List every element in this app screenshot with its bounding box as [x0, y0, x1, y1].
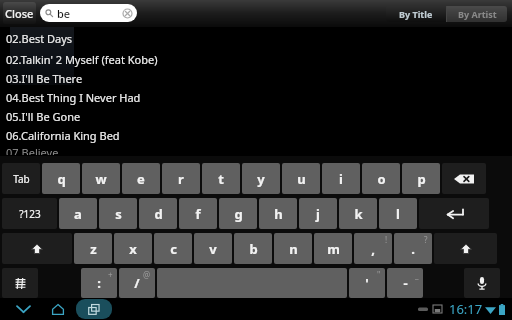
button[interactable]: a [59, 198, 97, 229]
button[interactable]: x [114, 233, 152, 264]
staticText: b [249, 240, 258, 258]
staticText: x [129, 240, 137, 258]
button[interactable]: Tab [2, 163, 40, 194]
staticText: _ [415, 269, 419, 280]
button[interactable]: Backspace [442, 163, 486, 194]
button[interactable]: ' [349, 268, 385, 298]
button[interactable]: : [81, 268, 117, 298]
button[interactable]: Enter [419, 198, 489, 229]
staticText: k [354, 205, 363, 223]
staticText: w [95, 170, 107, 188]
staticText: 07.Believe [6, 145, 59, 155]
button[interactable]: i [322, 163, 360, 194]
staticText: - [403, 274, 408, 292]
button[interactable]: s [99, 198, 137, 229]
button[interactable]: Shift [434, 233, 497, 264]
button[interactable]: Shift [2, 233, 72, 264]
button[interactable]: 02.Talkin' 2 Myself (feat Kobe) [0, 50, 512, 69]
staticText: d [154, 205, 163, 223]
button[interactable]: By Title [386, 6, 446, 22]
staticText: " [377, 269, 381, 280]
staticText: ' [365, 274, 369, 292]
staticText: y [257, 170, 265, 188]
button[interactable]: Voice input [464, 268, 500, 298]
button[interactable]: e [122, 163, 160, 194]
button[interactable]: By Artist [447, 6, 507, 22]
staticText: 06.California King Bed [6, 128, 120, 143]
staticText: ! [385, 234, 388, 245]
button[interactable]: Back [8, 299, 38, 319]
staticText: r [178, 170, 184, 188]
staticText: h [274, 205, 283, 223]
staticText: o [377, 170, 386, 188]
button[interactable]: o [362, 163, 400, 194]
button[interactable]: g [219, 198, 257, 229]
button[interactable]: l [379, 198, 417, 229]
staticText: / [134, 274, 140, 292]
button[interactable]: t [202, 163, 240, 194]
button[interactable]: r [162, 163, 200, 194]
staticText: Tab [13, 172, 30, 186]
button[interactable]: Recent apps [76, 299, 112, 319]
button[interactable]: Home [44, 299, 72, 319]
staticText: i [339, 170, 343, 188]
staticText: n [289, 240, 298, 258]
staticText: j [316, 205, 320, 223]
button[interactable]: b [234, 233, 272, 264]
button[interactable]: c [154, 233, 192, 264]
staticText: 03.I'll Be There [6, 71, 83, 86]
button[interactable]: 07.Believe [0, 145, 512, 155]
staticText: : [97, 274, 101, 292]
staticText: By Artist [458, 8, 497, 20]
button[interactable]: j [299, 198, 337, 229]
button[interactable]: h [259, 198, 297, 229]
staticText: @ [143, 269, 151, 280]
button[interactable]: 04.Best Thing I Never Had [0, 88, 512, 107]
button[interactable]: / [119, 268, 155, 298]
button[interactable]: f [179, 198, 217, 229]
button[interactable]: 03.I'll Be There [0, 69, 512, 88]
button[interactable]: 06.California King Bed [0, 126, 512, 145]
button[interactable]: Close [3, 2, 36, 24]
button[interactable]: p [402, 163, 440, 194]
button[interactable]: z [74, 233, 112, 264]
button[interactable]: 05.I'll Be Gone [0, 107, 512, 126]
staticText: z [90, 240, 97, 258]
button[interactable]: be [40, 4, 137, 22]
button[interactable]: q [42, 163, 80, 194]
staticText: v [209, 240, 217, 258]
staticText: 02.Talkin' 2 Myself (feat Kobe) [6, 52, 158, 67]
button[interactable]: d [139, 198, 177, 229]
staticText: a [74, 205, 82, 223]
button[interactable]: n [274, 233, 312, 264]
staticText: l [396, 205, 400, 223]
staticText: ?123 [19, 207, 41, 221]
staticText: Close [5, 6, 34, 21]
staticText: 02.Best Days [6, 31, 73, 46]
button[interactable]: , [354, 233, 392, 264]
staticText: , [371, 240, 375, 258]
button[interactable]: . [394, 233, 432, 264]
button[interactable]: Keyboard settings [2, 268, 38, 298]
button[interactable]: ?123 [2, 198, 57, 229]
staticText: p [417, 170, 426, 188]
staticText: u [297, 170, 306, 188]
button[interactable]: w [82, 163, 120, 194]
button[interactable]: Clear search [120, 6, 134, 20]
staticText: q [57, 170, 66, 188]
staticText: 16:17 [449, 300, 483, 318]
button[interactable]: y [242, 163, 280, 194]
staticText: c [170, 240, 177, 258]
button[interactable]: u [282, 163, 320, 194]
staticText: s [115, 205, 122, 223]
button[interactable]: - [387, 268, 423, 298]
staticText: t [218, 170, 224, 188]
button[interactable]: 02.Best Days [0, 27, 512, 50]
staticText: m [327, 240, 340, 258]
staticText: By Title [399, 8, 433, 20]
staticText: 05.I'll Be Gone [6, 109, 81, 124]
button[interactable]: m [314, 233, 352, 264]
button[interactable]: k [339, 198, 377, 229]
button[interactable]: v [194, 233, 232, 264]
